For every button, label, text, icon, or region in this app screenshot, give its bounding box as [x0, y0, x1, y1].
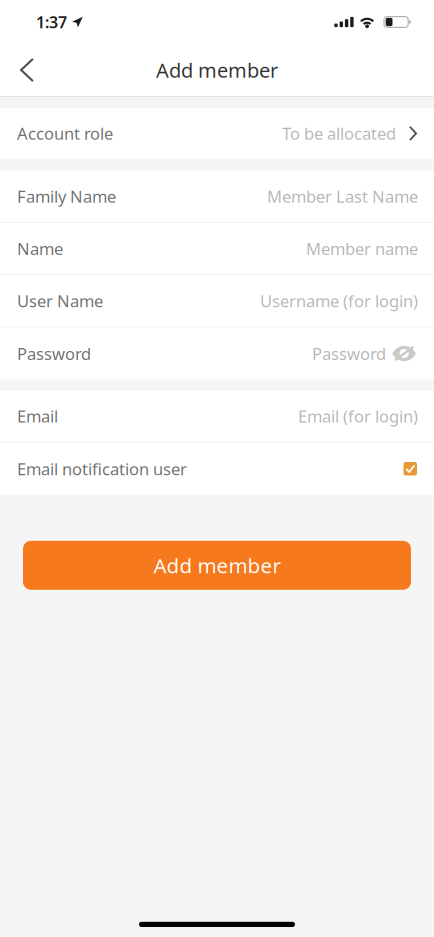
staticText: Email (for login): [298, 405, 418, 427]
staticText: Password: [312, 342, 386, 365]
button[interactable]: Account role: [0, 108, 434, 159]
staticText: Add member: [153, 551, 280, 579]
staticText: User Name: [17, 289, 103, 312]
staticText: Name: [17, 237, 63, 260]
staticText: Email: [17, 405, 58, 427]
button[interactable]: Email notification user: [403, 462, 417, 475]
staticText: Member Last Name: [267, 185, 418, 208]
staticText: Account role: [17, 122, 113, 145]
button[interactable]: Add member: [23, 541, 411, 590]
button[interactable]: Back: [6, 46, 48, 94]
staticText: Password: [17, 342, 91, 365]
staticText: Family Name: [17, 185, 116, 208]
staticText: To be allocated: [282, 122, 396, 145]
staticText: Username (for login): [260, 289, 418, 312]
staticText: Add member: [156, 56, 278, 84]
staticText: Email notification user: [17, 457, 187, 480]
staticText: Member name: [306, 237, 418, 260]
staticText: 1:37: [36, 11, 67, 33]
button[interactable]: Show password: [386, 345, 417, 362]
